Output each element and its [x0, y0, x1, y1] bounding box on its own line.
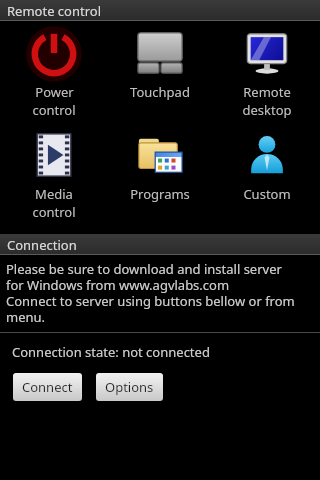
button[interactable]: Power control	[1, 27, 107, 119]
other: Custom	[243, 131, 291, 179]
staticText: Custom	[243, 185, 291, 203]
button[interactable]: Media control	[1, 129, 107, 221]
staticText: Power	[35, 83, 74, 101]
staticText: control	[32, 101, 76, 119]
other: Remote desktop	[243, 29, 291, 77]
staticText: Programs	[130, 185, 190, 203]
other: Media control	[30, 131, 78, 179]
button[interactable]: Custom	[214, 129, 320, 203]
button[interactable]: Remote desktop	[214, 27, 320, 119]
staticText: Connect	[22, 378, 73, 396]
other: Programs	[136, 131, 184, 179]
button[interactable]: Programs	[107, 129, 213, 203]
other: Touchpad	[136, 29, 184, 77]
staticText: Touchpad	[130, 83, 190, 101]
staticText: Please be sure to download and install s…	[6, 260, 295, 325]
other: Power control	[30, 29, 78, 77]
staticText: Connection	[7, 236, 77, 254]
staticText: Media	[35, 185, 73, 203]
staticText: desktop	[242, 101, 292, 119]
staticText: Remote control	[7, 2, 102, 20]
button[interactable]: Connect	[13, 373, 82, 401]
staticText: Options	[105, 378, 154, 396]
staticText: control	[32, 203, 76, 221]
staticText: Remote	[243, 83, 291, 101]
button[interactable]: Touchpad	[107, 27, 213, 101]
button[interactable]: Options	[96, 373, 163, 401]
staticText: Connection state: not connected	[12, 343, 210, 361]
